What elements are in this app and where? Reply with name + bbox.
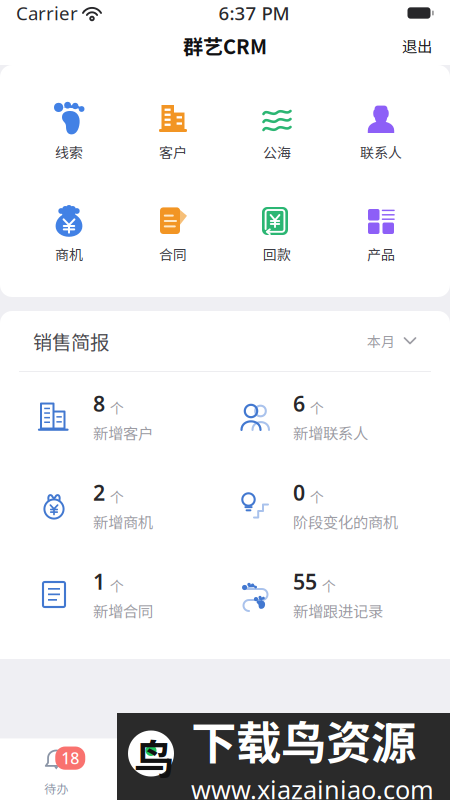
staticText: 商机 xyxy=(55,244,83,264)
staticText: 产品 xyxy=(367,244,395,264)
button[interactable]: 回款 xyxy=(225,203,329,264)
staticText: 个 xyxy=(322,575,336,596)
button[interactable]: 线索 xyxy=(17,101,121,162)
staticText: 合同 xyxy=(159,244,187,264)
staticText: www.xiazainiao.com xyxy=(191,772,434,800)
button[interactable]: 本月 xyxy=(367,331,417,351)
staticText: 新增合同 xyxy=(93,600,153,622)
staticText: 个 xyxy=(310,486,324,507)
staticText: 销售简报 xyxy=(33,327,109,355)
staticText: 我的 xyxy=(382,779,406,797)
staticText: 工作台 xyxy=(263,779,299,797)
staticText: 公海 xyxy=(263,142,291,162)
staticText: 18 xyxy=(61,747,79,769)
button[interactable]: 我的 xyxy=(337,746,450,797)
staticText: 新增联系人 xyxy=(293,422,368,444)
staticText: 本月 xyxy=(367,331,395,351)
staticText: 鸟 xyxy=(134,727,174,785)
staticText: 55 xyxy=(293,567,317,595)
staticText: 阶段变化的商机 xyxy=(293,511,398,533)
staticText: 客户 xyxy=(159,142,187,162)
staticText: 1 xyxy=(93,567,105,595)
staticText: 新增商机 xyxy=(93,511,153,533)
staticText: 新增跟进记录 xyxy=(293,600,383,622)
staticText: 新增客户 xyxy=(93,422,153,444)
staticText: 线索 xyxy=(55,142,83,162)
staticText: Carrier xyxy=(16,1,78,25)
button[interactable]: 联系人 xyxy=(329,101,433,162)
staticText: 8 xyxy=(93,389,105,417)
staticText: 待办 xyxy=(44,779,68,797)
staticText: 个 xyxy=(310,397,324,418)
button[interactable]: 合同 xyxy=(121,203,225,264)
staticText: 2 xyxy=(93,478,105,506)
button[interactable]: 产品 xyxy=(329,203,433,264)
button[interactable]: 商机 xyxy=(17,203,121,264)
staticText: 个 xyxy=(110,575,124,596)
staticText: 下载鸟资源 xyxy=(191,707,416,772)
staticText: 6 xyxy=(293,389,305,417)
button[interactable]: 18 xyxy=(0,746,112,797)
button[interactable]: 退出 xyxy=(384,26,450,65)
staticText: 个 xyxy=(110,486,124,507)
staticText: 群艺CRM xyxy=(183,31,267,60)
staticText: 0 xyxy=(293,478,305,506)
staticText: 回款 xyxy=(263,244,291,264)
button[interactable]: 工作台 xyxy=(225,746,337,797)
button[interactable]: 动态 xyxy=(112,746,225,797)
button[interactable]: 客户 xyxy=(121,101,225,162)
staticText: 6:37 PM xyxy=(218,1,289,25)
staticText: 个 xyxy=(110,397,124,418)
staticText: 联系人 xyxy=(360,142,402,162)
staticText: 退出 xyxy=(402,34,432,57)
button[interactable]: 公海 xyxy=(225,101,329,162)
